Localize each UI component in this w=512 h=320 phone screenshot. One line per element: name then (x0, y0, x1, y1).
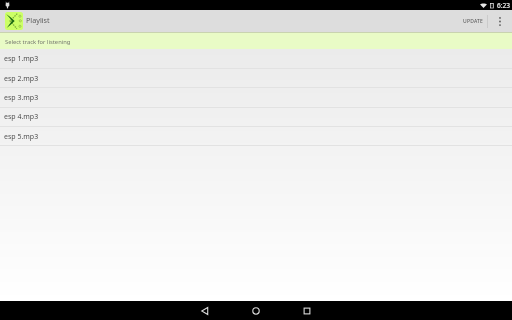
other: Battery (490, 3, 494, 8)
button[interactable]: UPDATE (456, 10, 487, 32)
staticText: esp 2.mp3 (4, 74, 39, 84)
staticText: esp 3.mp3 (4, 93, 39, 103)
button[interactable]: Playlist app icon (5, 12, 23, 30)
button[interactable]: esp 1.mp3 (0, 49, 512, 69)
staticText: Playlist (26, 15, 50, 25)
button[interactable]: Recent apps (292, 301, 322, 320)
staticText: Select track for listening (5, 38, 71, 46)
button[interactable]: esp 5.mp3 (0, 127, 512, 146)
button[interactable]: More options (488, 10, 512, 32)
staticText: 6:23 (497, 1, 510, 10)
staticText: UPDATE (463, 18, 484, 25)
button[interactable]: esp 4.mp3 (0, 107, 512, 127)
button[interactable]: Home (241, 301, 271, 320)
staticText: esp 5.mp3 (4, 132, 39, 142)
staticText: esp 1.mp3 (4, 54, 39, 64)
other: Wi-Fi (480, 3, 487, 8)
other: Notification (5, 1, 10, 9)
button[interactable]: esp 3.mp3 (0, 88, 512, 107)
button[interactable]: esp 2.mp3 (0, 69, 512, 88)
button[interactable]: Back (190, 301, 220, 320)
staticText: esp 4.mp3 (4, 112, 39, 122)
